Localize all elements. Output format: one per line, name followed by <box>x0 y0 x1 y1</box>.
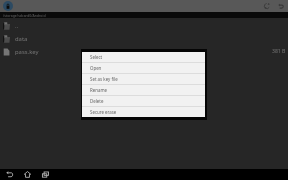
staticText: Select <box>90 54 103 60</box>
button[interactable]: Home <box>18 169 36 180</box>
button[interactable]: data <box>0 32 288 45</box>
button[interactable]: Undo <box>274 0 288 12</box>
button[interactable]: Open <box>82 63 205 74</box>
button[interactable]: Select <box>82 52 205 63</box>
staticText: Open <box>90 65 102 71</box>
button[interactable]: Back <box>0 169 18 180</box>
button[interactable]: Rename <box>82 85 205 96</box>
staticText: .. <box>15 22 19 30</box>
button[interactable]: App icon <box>3 1 13 11</box>
staticText: data <box>15 35 28 43</box>
button[interactable]: Set as key file <box>82 74 205 85</box>
button[interactable]: Recent apps <box>36 169 54 180</box>
staticText: /storage/sdcard0/Android <box>3 13 46 18</box>
staticText: pass.key <box>15 48 39 56</box>
staticText: 381 B <box>272 48 286 55</box>
staticText: Secure erase <box>90 109 117 115</box>
staticText: Rename <box>90 87 107 93</box>
staticText: Delete <box>90 98 104 104</box>
staticText: Set as key file <box>90 76 118 82</box>
button[interactable]: pass.key <box>0 45 288 58</box>
button[interactable]: Secure erase <box>82 107 205 117</box>
button[interactable]: Delete <box>82 96 205 107</box>
button[interactable]: .. <box>0 19 288 32</box>
button[interactable]: Refresh <box>260 0 274 12</box>
